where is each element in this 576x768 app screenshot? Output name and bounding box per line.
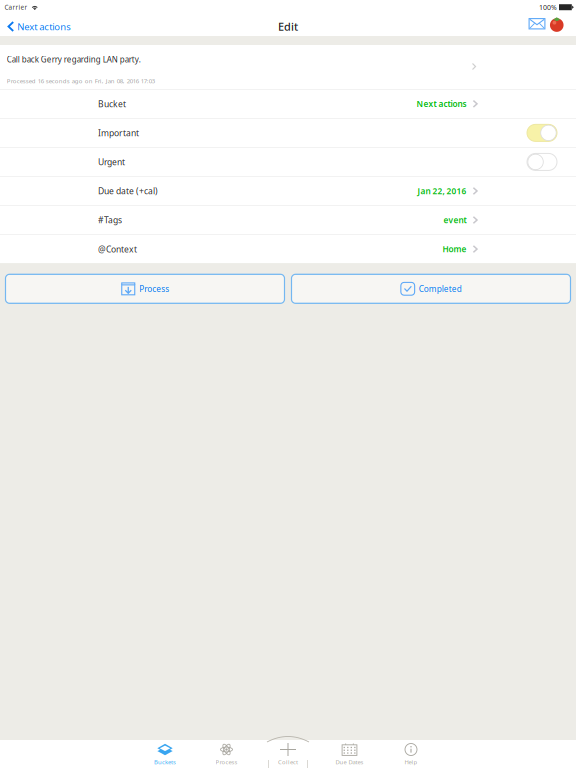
button[interactable]: Bucket xyxy=(0,89,576,118)
staticText: Carrier xyxy=(4,3,27,12)
staticText: Processed 16 seconds ago on Fri, Jan 08,… xyxy=(7,77,155,85)
staticText: Due date (+cal) xyxy=(98,185,158,197)
button[interactable]: Important xyxy=(0,118,576,147)
button[interactable]: Collect xyxy=(257,740,319,768)
button[interactable]: Mail xyxy=(515,17,545,36)
button[interactable]: Due date (+cal) xyxy=(0,176,576,205)
button[interactable]: #Tags xyxy=(0,205,576,234)
staticText: Buckets xyxy=(154,758,176,766)
staticText: Edit xyxy=(278,19,298,34)
staticText: Home xyxy=(442,243,466,255)
staticText: event xyxy=(443,214,466,226)
staticText: Urgent xyxy=(98,156,125,168)
staticText: Bucket xyxy=(98,98,126,110)
staticText: Next actions xyxy=(416,98,466,109)
staticText: #Tags xyxy=(98,214,122,226)
button[interactable]: Process xyxy=(196,740,257,768)
staticText: Process xyxy=(215,758,237,766)
staticText: Important xyxy=(98,127,139,139)
button[interactable]: Call back Gerry regarding LAN party. xyxy=(0,45,576,89)
button[interactable]: Buckets xyxy=(134,740,196,768)
button[interactable]: Help xyxy=(380,740,442,768)
staticText: Help xyxy=(404,758,417,766)
staticText: Collect xyxy=(278,758,298,766)
staticText: @Context xyxy=(98,243,137,255)
button[interactable]: Urgent xyxy=(0,147,576,176)
staticText: Call back Gerry regarding LAN party. xyxy=(7,54,141,65)
button[interactable]: Pomodoro timer xyxy=(545,17,576,36)
staticText: Due Dates xyxy=(335,758,363,766)
button[interactable]: Process xyxy=(5,274,284,303)
staticText: Next actions xyxy=(17,20,71,33)
button[interactable]: @Context xyxy=(0,234,576,263)
button[interactable]: Due Dates xyxy=(319,740,380,768)
button[interactable]: Next actions xyxy=(0,17,77,36)
staticText: Completed xyxy=(419,283,462,294)
staticText: 100% xyxy=(539,2,557,12)
staticText: Process xyxy=(139,283,169,294)
staticText: Jan 22, 2016 xyxy=(417,185,466,197)
button[interactable]: Completed xyxy=(291,274,570,303)
